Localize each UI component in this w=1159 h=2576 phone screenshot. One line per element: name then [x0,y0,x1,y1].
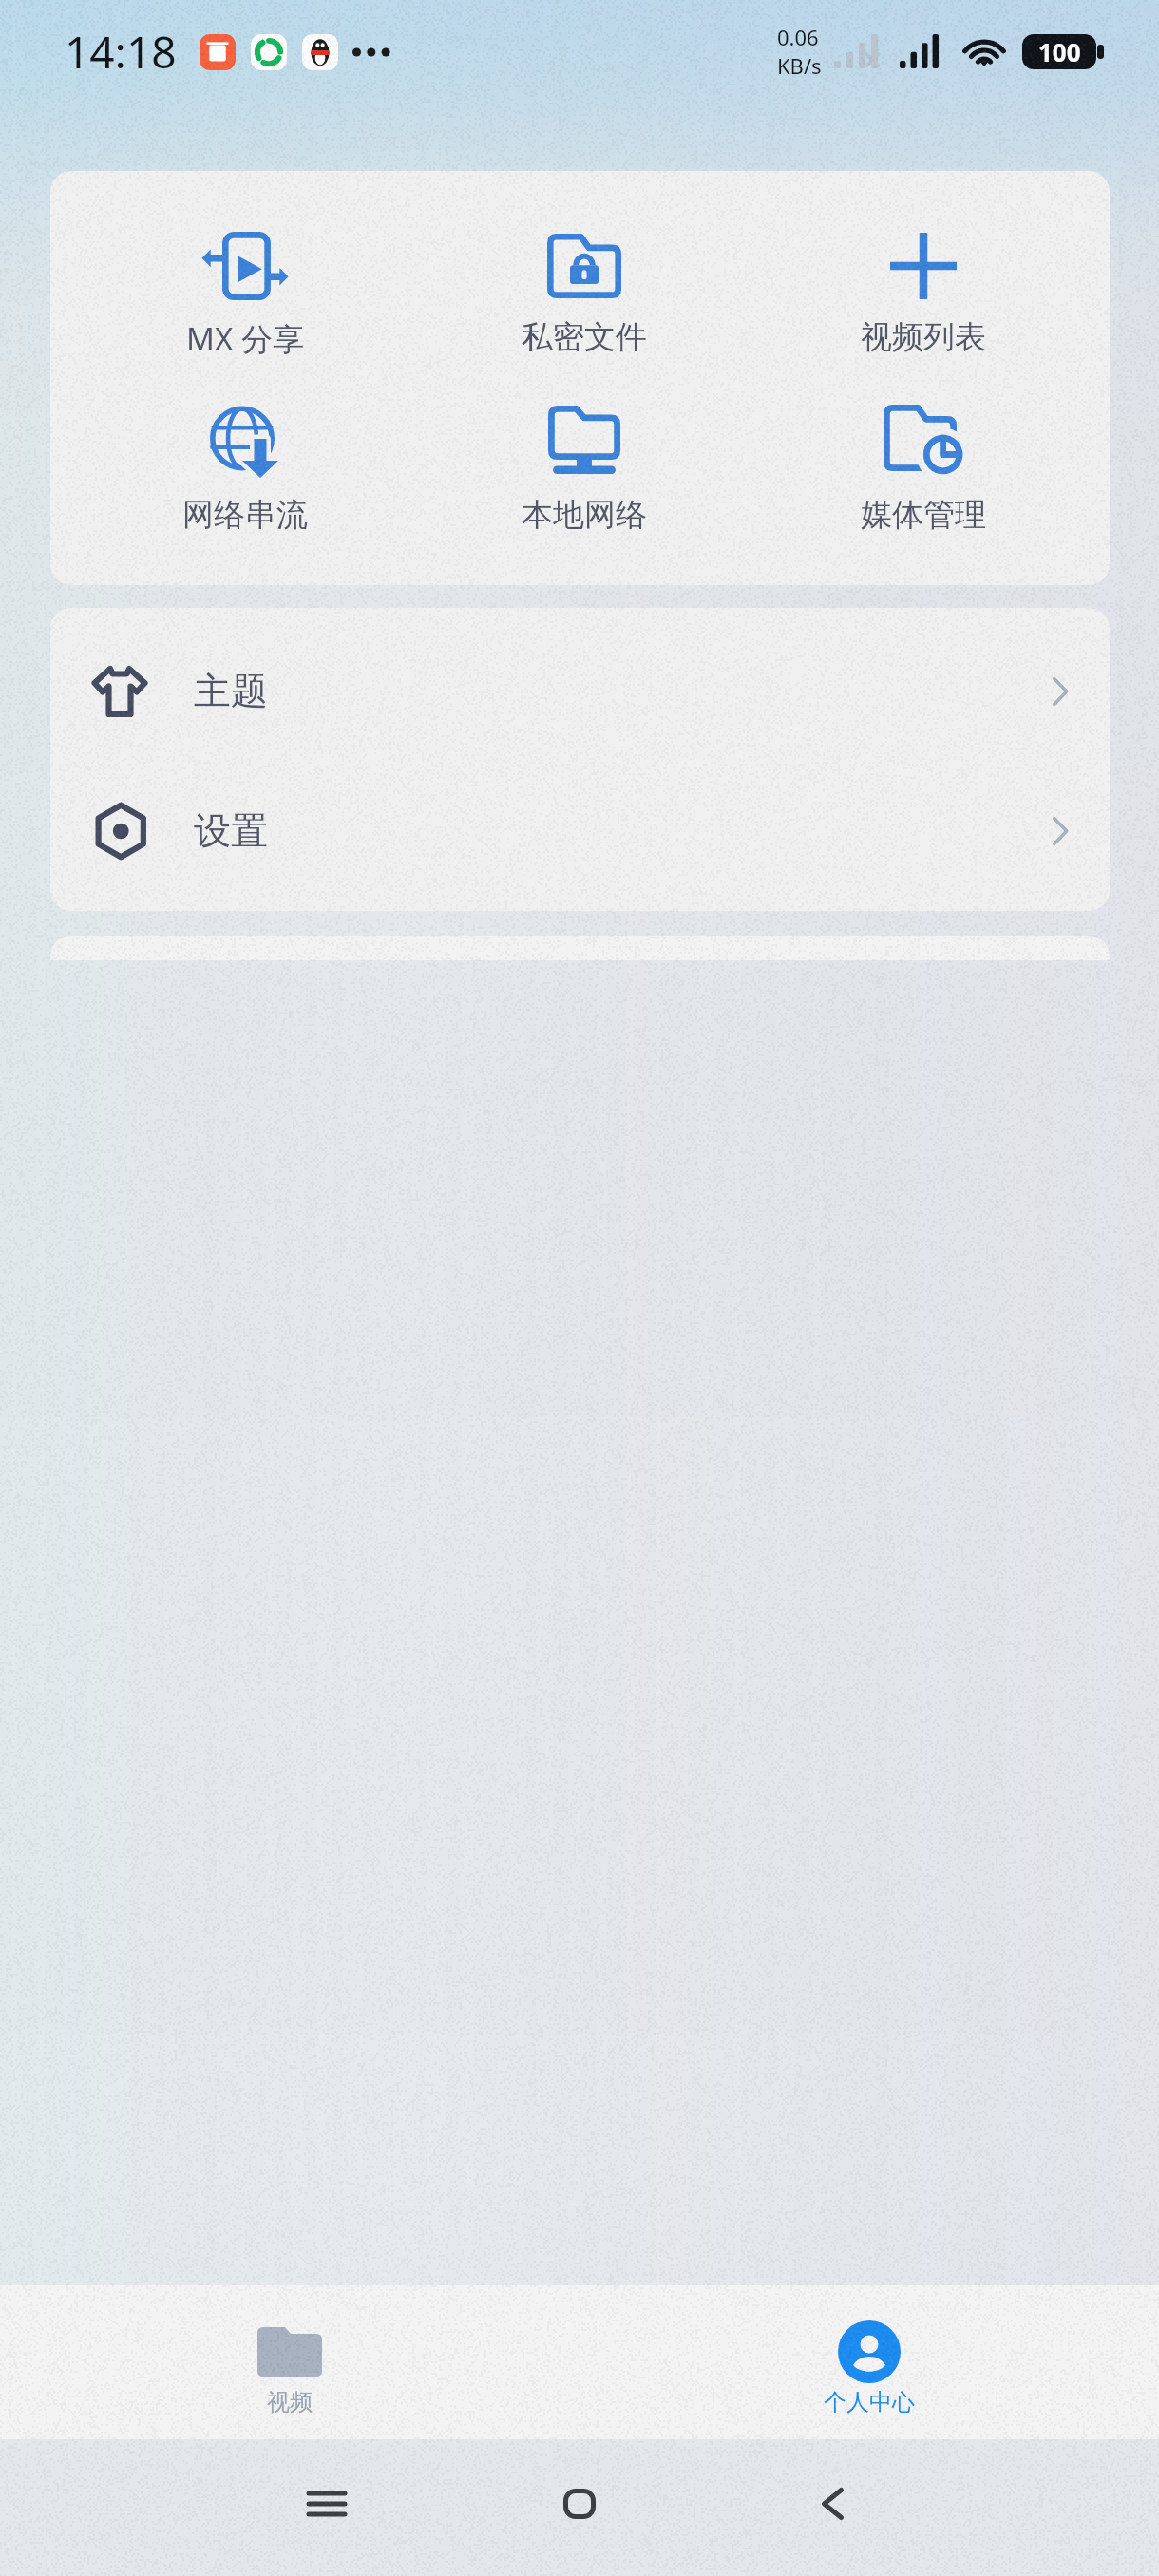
staticText: 14:18 [65,22,177,82]
button[interactable]: 视频 [0,2285,579,2439]
staticText: 网络串流 [182,495,308,535]
staticText: 100 [1038,35,1081,68]
staticText: 主题 [194,668,268,714]
button[interactable]: 网络串流 [75,396,414,535]
button[interactable]: MX 分享 [75,222,414,360]
button[interactable]: 本地网络 [414,396,753,535]
staticText: 私密文件 [522,317,647,357]
button[interactable]: 视频列表 [753,222,1092,357]
staticText: 媒体管理 [861,495,986,535]
button[interactable]: Back [790,2462,874,2546]
staticText: 设置 [194,807,268,854]
button[interactable]: 媒体管理 [753,396,1092,535]
staticText: 视频列表 [861,317,986,357]
button[interactable]: 主题 [50,621,1110,761]
button[interactable]: 私密文件 [414,222,753,357]
button[interactable]: Recents [285,2462,369,2546]
staticText: 个人中心 [824,2388,915,2416]
button[interactable]: 设置 [50,761,1110,900]
staticText: KB/s [777,51,822,80]
button[interactable]: 个人中心 [579,2285,1159,2439]
staticText: 0.06 [777,23,819,51]
staticText: 视频 [267,2388,313,2416]
button[interactable]: Home [538,2462,621,2546]
staticText: 本地网络 [522,495,647,535]
staticText: MX 分享 [186,317,304,360]
